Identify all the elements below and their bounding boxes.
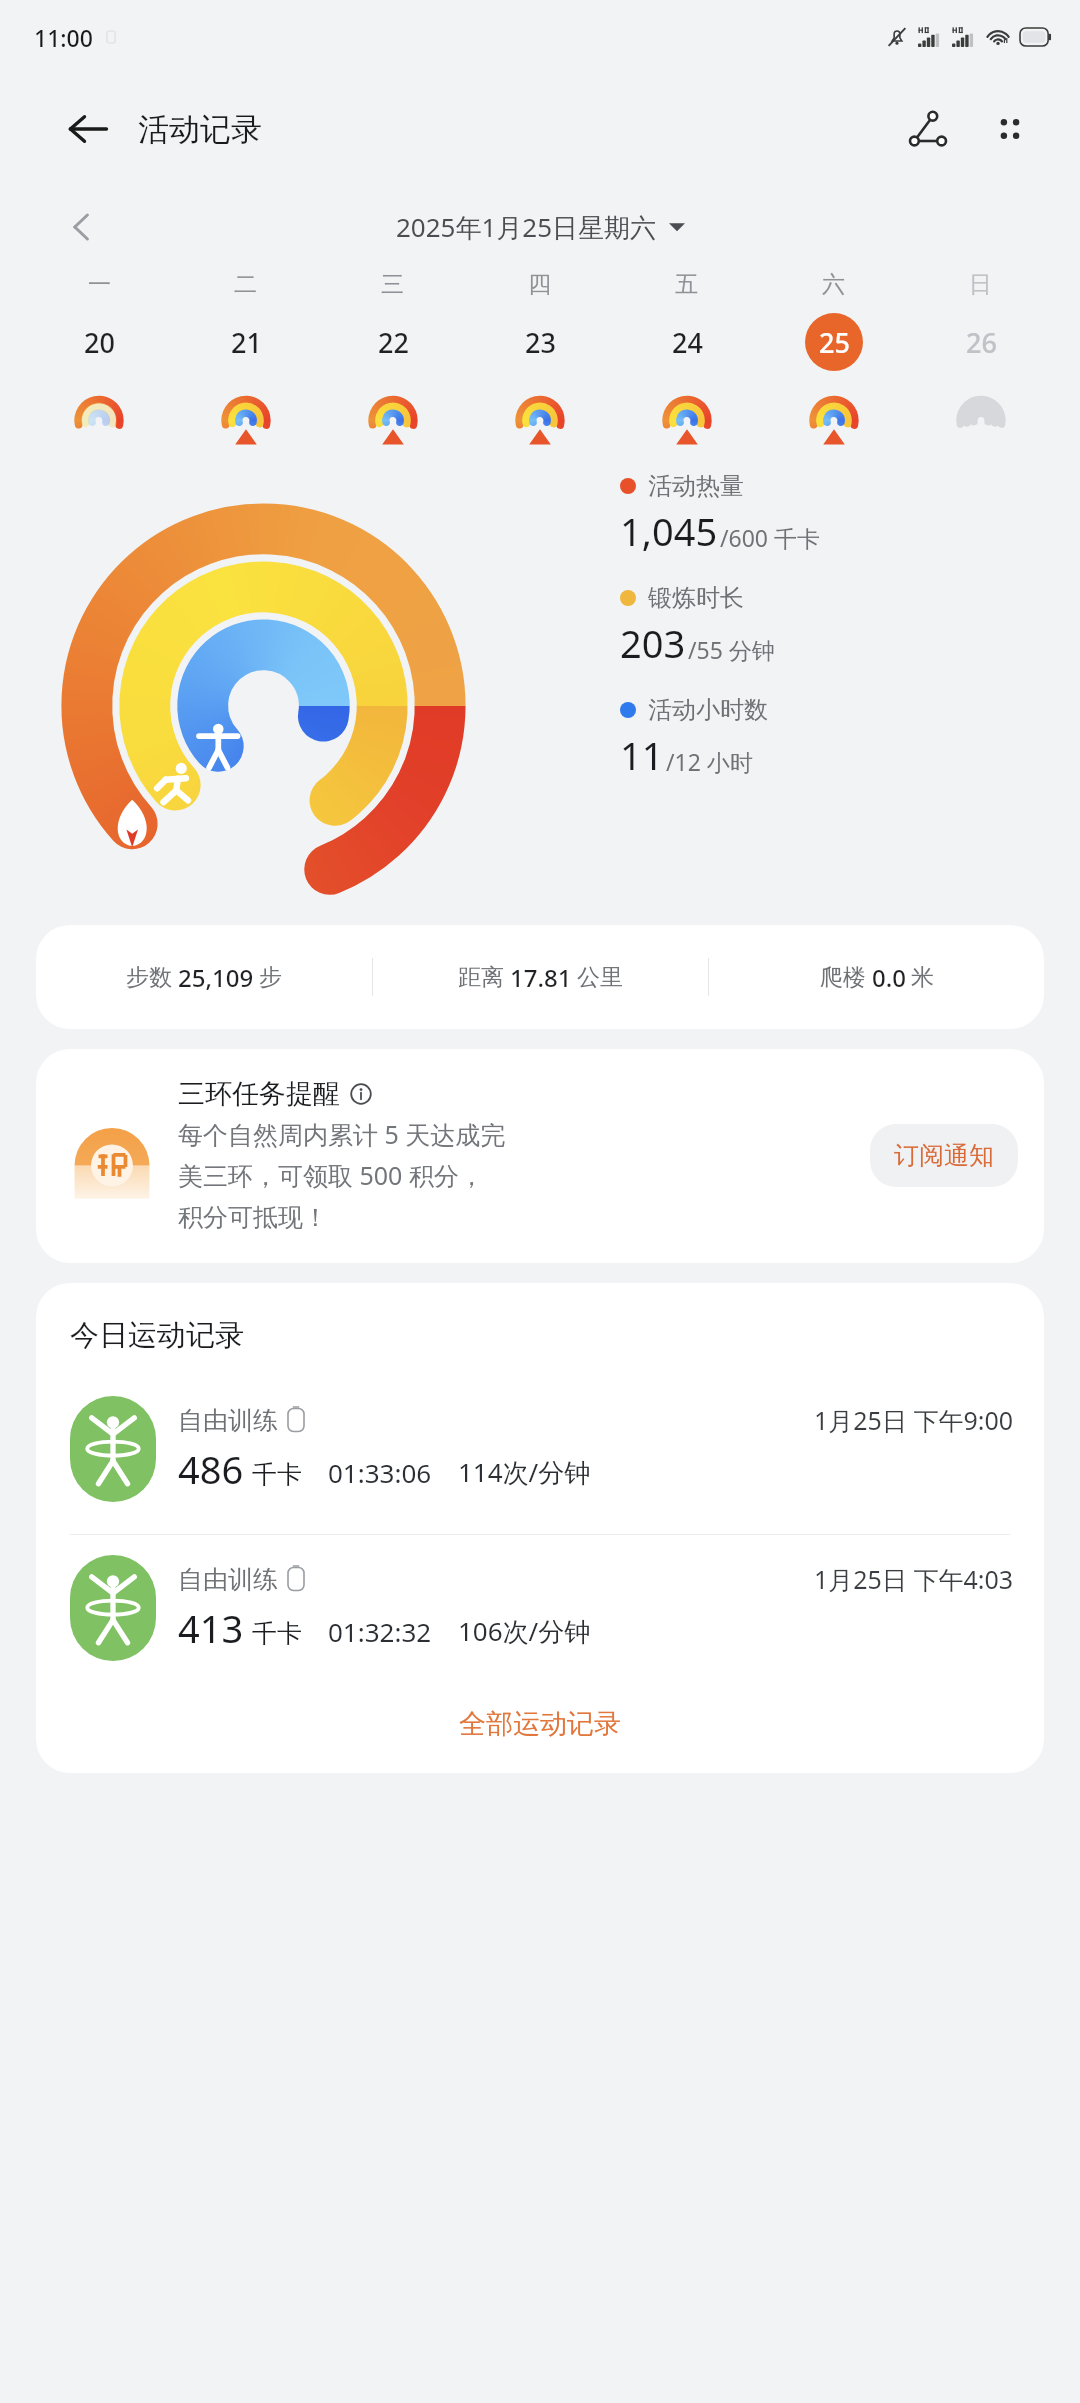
staticText: 0.0 [872, 961, 906, 994]
staticText: /12 小时 [666, 746, 753, 777]
button[interactable]: 订阅通知 [870, 1124, 1018, 1187]
button[interactable]: 全部运动记录 [429, 1697, 651, 1751]
staticText: 步数 [126, 963, 172, 992]
button[interactable]: More options [980, 99, 1040, 159]
button[interactable]: Back [62, 103, 114, 155]
button[interactable]: 六 [760, 270, 907, 439]
staticText: 六 [822, 270, 845, 299]
staticText: 锻炼时长 [648, 583, 744, 613]
button[interactable]: 步数 [36, 925, 1044, 1029]
staticText: 全部运动记录 [459, 1707, 621, 1741]
button[interactable]: Previous day [58, 203, 106, 251]
staticText: 1月25日 下午4:03 [814, 1562, 1014, 1596]
button[interactable]: Share [898, 99, 958, 159]
staticText: 三 [381, 270, 404, 299]
staticText: 1月25日 下午9:00 [814, 1403, 1014, 1437]
staticText: /55 分钟 [688, 634, 775, 665]
staticText: 三环任务提醒 [178, 1077, 340, 1111]
staticText: 一 [88, 270, 111, 299]
staticText: 20 [84, 324, 115, 361]
staticText: 活动记录 [138, 110, 262, 149]
staticText: 203 [620, 617, 686, 669]
staticText: 距离 [458, 963, 504, 992]
button[interactable]: 二 [172, 270, 319, 439]
staticText: 22 [378, 324, 409, 361]
staticText: 21 [231, 324, 262, 361]
button[interactable]: 2025年1月25日星期六 [396, 209, 685, 245]
staticText: 二 [234, 270, 257, 299]
staticText: 25 [819, 324, 850, 361]
staticText: 自由训练 [178, 1564, 278, 1595]
staticText: 23 [525, 324, 556, 361]
staticText: 24 [672, 324, 703, 361]
staticText: 01:32:32 [328, 1614, 432, 1649]
staticText: 订阅通知 [894, 1140, 994, 1171]
staticText: 日 [969, 270, 992, 299]
staticText: 每个自然周内累计 5 天达成完美三环，可领取 500 积分，积分可抵现！ [178, 1117, 508, 1233]
button[interactable]: 三环任务提醒 [36, 1049, 1044, 1263]
staticText: 486 [178, 1443, 244, 1495]
staticText: 千卡 [252, 1459, 302, 1490]
button[interactable]: 自由训练 [36, 1541, 1044, 1675]
staticText: 17.81 [510, 961, 572, 994]
staticText: 步 [259, 963, 282, 992]
button[interactable]: 五 [613, 270, 760, 439]
staticText: 公里 [577, 963, 623, 992]
staticText: 1,045 [620, 505, 718, 557]
staticText: 今日运动记录 [70, 1317, 244, 1354]
staticText: 活动小时数 [648, 695, 768, 725]
staticText: 爬楼 [820, 963, 866, 992]
staticText: 01:33:06 [328, 1455, 432, 1490]
staticText: 活动热量 [648, 471, 744, 501]
staticText: 2025年1月25日星期六 [396, 209, 657, 245]
staticText: /600 千卡 [720, 522, 821, 553]
staticText: 11 [620, 729, 664, 781]
staticText: 26 [966, 324, 997, 361]
button[interactable]: 四 [466, 270, 613, 439]
staticText: 413 [178, 1602, 244, 1654]
staticText: 五 [675, 270, 698, 299]
button[interactable]: 一 [26, 270, 172, 439]
staticText: 106次/分钟 [458, 1613, 591, 1649]
button[interactable]: 日 [907, 270, 1054, 439]
staticText: 11:00 [34, 22, 93, 53]
button[interactable]: 三 [319, 270, 466, 439]
staticText: 米 [911, 963, 934, 992]
button[interactable]: 自由训练 [36, 1382, 1044, 1516]
staticText: 25,109 [178, 961, 254, 994]
staticText: 四 [528, 270, 551, 299]
staticText: 千卡 [252, 1618, 302, 1649]
staticText: 114次/分钟 [458, 1454, 591, 1490]
staticText: 自由训练 [178, 1405, 278, 1436]
